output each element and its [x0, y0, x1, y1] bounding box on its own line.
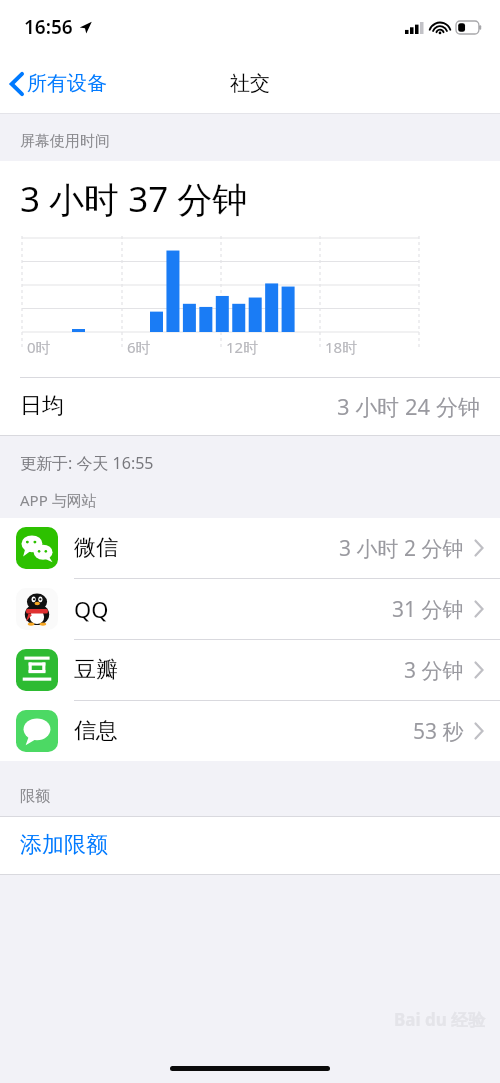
staticText: 3 分钟 — [404, 656, 464, 685]
button[interactable]: 所有设备 — [0, 65, 117, 102]
button[interactable]: 信息 — [0, 701, 500, 761]
staticText: 16:56 — [24, 14, 73, 40]
staticText: QQ — [74, 594, 109, 624]
staticText: 日均 — [20, 392, 64, 420]
staticText: 6时 — [127, 337, 151, 357]
staticText: 限额 — [20, 787, 50, 806]
staticText: 31 分钟 — [392, 595, 464, 624]
button[interactable]: 豆瓣 — [0, 640, 500, 701]
staticText: 添加限额 — [20, 831, 108, 859]
staticText: 所有设备 — [27, 71, 107, 96]
staticText: 3 小时 2 分钟 — [339, 534, 464, 563]
staticText: 3 小时 24 分钟 — [337, 391, 480, 421]
staticText: APP 与网站 — [20, 490, 97, 510]
staticText: 3 小时 37 分钟 — [20, 175, 248, 223]
staticText: 信息 — [74, 717, 118, 745]
staticText: 微信 — [74, 534, 118, 562]
button[interactable]: QQ — [0, 579, 500, 640]
staticText: 12时 — [226, 337, 259, 357]
staticText: 豆瓣 — [74, 656, 118, 684]
staticText: 0时 — [27, 337, 51, 357]
button[interactable]: 添加限额 — [0, 817, 500, 874]
staticText: 社交 — [230, 71, 270, 96]
staticText: Bai du 经验 — [394, 1008, 486, 1031]
staticText: 18时 — [325, 337, 358, 357]
button[interactable]: 微信 — [0, 518, 500, 579]
staticText: 屏幕使用时间 — [20, 132, 110, 151]
staticText: 更新于: 今天 16:55 — [20, 452, 154, 474]
staticText: 53 秒 — [413, 717, 464, 746]
